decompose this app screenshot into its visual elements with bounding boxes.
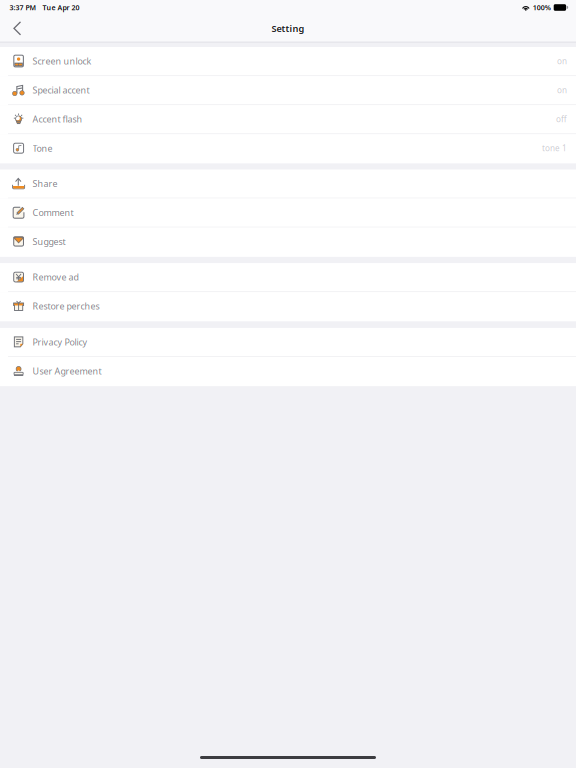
staticText: Comment xyxy=(32,206,73,219)
staticText: Restore perches xyxy=(32,300,99,312)
button[interactable]: User Agreement xyxy=(0,357,576,386)
button[interactable]: Suggest xyxy=(0,228,576,257)
staticText: tone 1 xyxy=(542,143,567,154)
staticText: Screen unlock xyxy=(32,55,91,67)
staticText: 100% xyxy=(533,3,551,12)
staticText: Privacy Policy xyxy=(32,336,87,348)
button[interactable]: Share xyxy=(0,169,576,199)
button[interactable]: Privacy Policy xyxy=(0,328,576,357)
staticText: Accent flash xyxy=(32,113,82,125)
staticText: 3:37 PM xyxy=(9,3,36,12)
button[interactable]: Back xyxy=(8,18,28,38)
staticText: on xyxy=(557,55,567,67)
staticText: Suggest xyxy=(32,235,65,248)
button[interactable]: Accent flash xyxy=(0,105,576,134)
button[interactable]: Restore perches xyxy=(0,292,576,321)
button[interactable]: Remove ad xyxy=(0,263,576,292)
staticText: Setting xyxy=(271,22,304,35)
button[interactable]: Comment xyxy=(0,199,576,228)
button[interactable]: Screen unlock xyxy=(0,47,576,76)
staticText: Special accent xyxy=(32,84,89,96)
staticText: Tone xyxy=(32,142,52,154)
staticText: Remove ad xyxy=(32,271,78,283)
staticText: User Agreement xyxy=(32,365,101,377)
staticText: on xyxy=(557,84,567,96)
button[interactable]: Tone xyxy=(0,134,576,163)
staticText: off xyxy=(556,114,567,125)
staticText: Share xyxy=(32,177,57,190)
button[interactable]: Special accent xyxy=(0,76,576,105)
staticText: Tue Apr 20 xyxy=(42,3,79,12)
